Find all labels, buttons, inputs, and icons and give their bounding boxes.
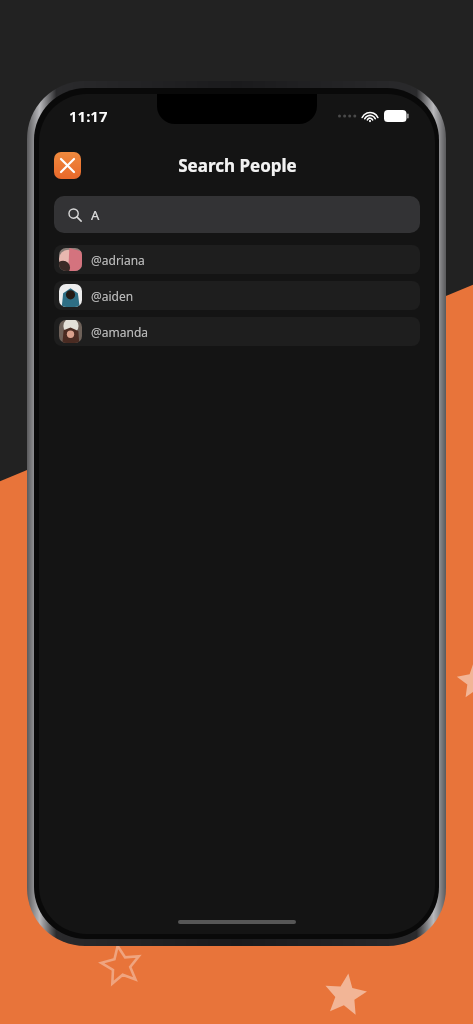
button[interactable]: @aiden (54, 281, 420, 310)
staticText: @amanda (91, 324, 149, 340)
staticText: @aiden (91, 288, 134, 304)
button[interactable]: A (54, 196, 420, 233)
button[interactable]: @adriana (54, 245, 420, 274)
button[interactable]: Close (54, 152, 81, 179)
staticText: 11:17 (69, 106, 108, 126)
staticText: Search People (178, 154, 297, 177)
button[interactable]: @amanda (54, 317, 420, 346)
staticText: A (91, 206, 100, 224)
staticText: @adriana (91, 252, 145, 268)
